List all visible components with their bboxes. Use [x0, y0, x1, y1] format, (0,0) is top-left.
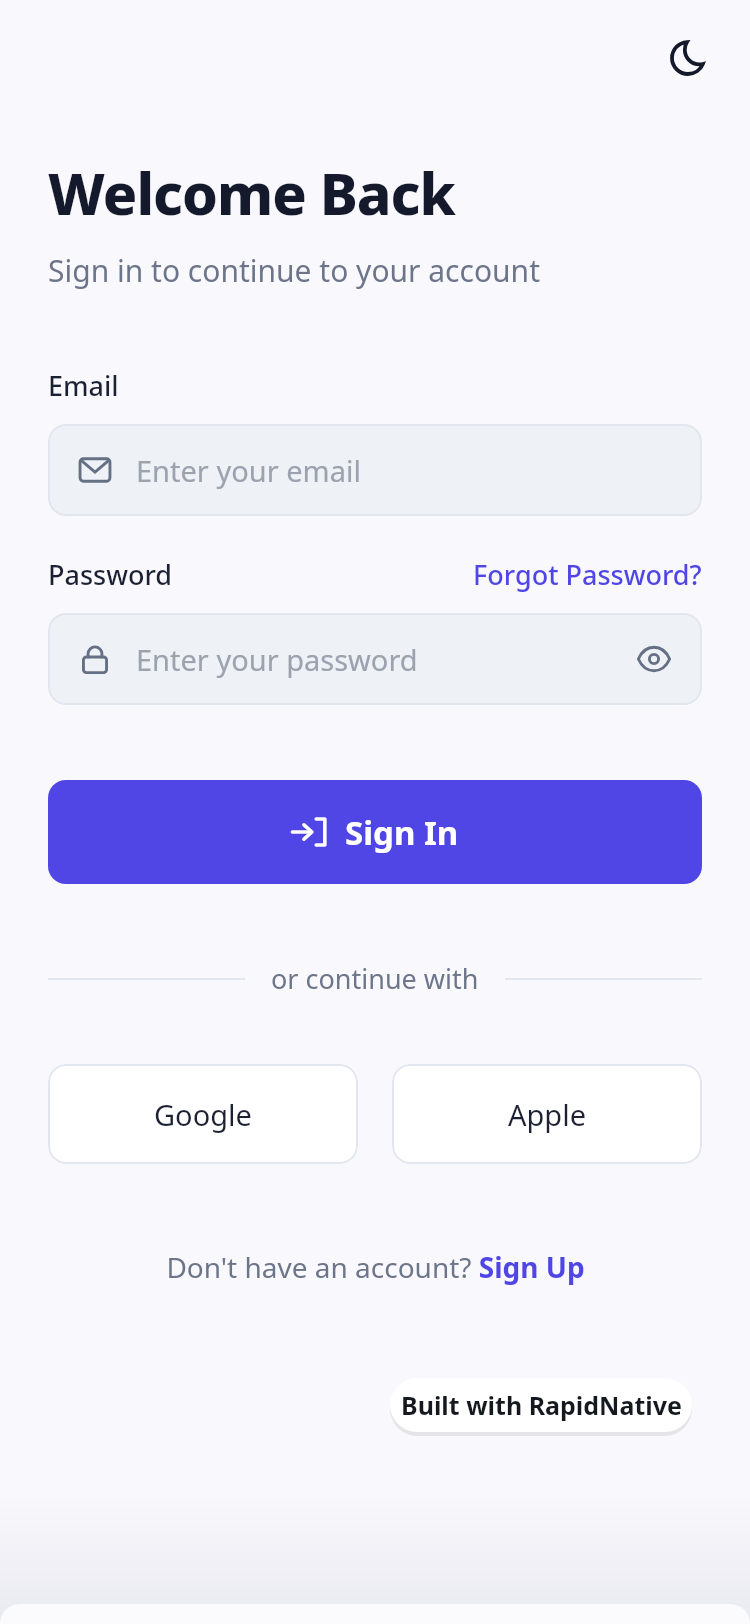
button[interactable]: Forgot Password? — [473, 556, 702, 593]
staticText: Sign In — [345, 810, 459, 855]
staticText: Enter your email — [136, 451, 361, 490]
staticText: Apple — [508, 1095, 587, 1134]
staticText: Built with RapidNative — [401, 1388, 682, 1422]
staticText: or continue with — [271, 960, 479, 997]
button[interactable]: Enter your password — [48, 613, 702, 705]
staticText: Don't have an account? Sign Up — [166, 1248, 585, 1286]
button[interactable]: Enter your email — [48, 424, 702, 516]
staticText: Forgot Password? — [473, 556, 702, 593]
button[interactable]: Toggle dark mode — [660, 30, 716, 86]
staticText: Google — [154, 1095, 252, 1134]
button[interactable]: Apple — [392, 1064, 702, 1164]
staticText: Welcome Back — [48, 154, 455, 232]
button[interactable]: Sign In — [48, 780, 702, 884]
staticText: Enter your password — [136, 640, 418, 679]
button[interactable]: Built with RapidNative — [390, 1378, 692, 1432]
staticText: Password — [48, 556, 173, 593]
staticText: Email — [48, 367, 119, 404]
button[interactable]: Show password — [630, 635, 678, 683]
button[interactable]: Don't have an account? Sign Up — [162, 1246, 589, 1288]
staticText: Sign in to continue to your account — [48, 250, 540, 291]
button[interactable]: Google — [48, 1064, 358, 1164]
